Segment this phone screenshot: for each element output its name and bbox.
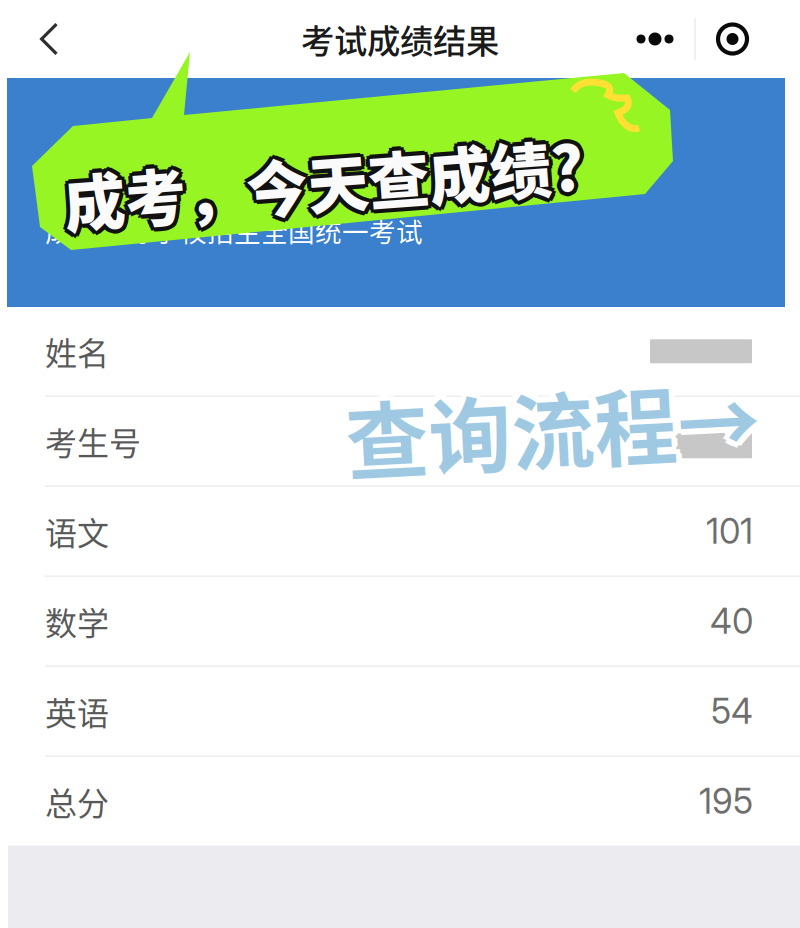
staticText: 考试成绩结果 [301, 15, 499, 63]
staticText: 查询流程→ [347, 381, 762, 501]
staticText: 成考，今天查成绩? [80, 133, 601, 222]
staticText: 语文 [45, 508, 109, 554]
staticText: 成考，今天查成绩? [88, 133, 609, 222]
staticText: 总分 [45, 778, 109, 824]
staticText: 54 [711, 690, 753, 732]
staticText: 101 [706, 510, 753, 552]
staticText: 成考，今天查成绩? [84, 129, 605, 218]
button[interactable]: More [616, 11, 694, 67]
staticText: 英语 [45, 688, 109, 734]
button[interactable]: 语文 [0, 487, 800, 575]
staticText: 195 [699, 780, 753, 822]
staticText: 成人高等学校招生全国统一考试 [45, 211, 423, 250]
button[interactable]: 姓名 [0, 307, 800, 395]
staticText: 查询流程→ [353, 375, 768, 495]
staticText: 查询流程→ [351, 371, 766, 490]
button[interactable]: 总分 [0, 757, 800, 845]
staticText: 成考，今天查成绩? [87, 130, 608, 219]
staticText: 40 [710, 600, 753, 642]
button[interactable]: 英语 [0, 667, 800, 755]
staticText: 查询流程→ [343, 379, 758, 499]
staticText: 查询流程→ [343, 371, 758, 490]
staticText: 查询流程→ [351, 379, 766, 499]
button[interactable]: Close [696, 11, 769, 67]
staticText: 成考，今天查成绩? [87, 136, 608, 225]
staticText: 成考，今天查成绩? [84, 133, 605, 222]
staticText: 查询流程→ [347, 375, 762, 495]
staticText: 成考，今天查成绩? [84, 137, 605, 226]
staticText: 数学 [45, 598, 109, 644]
button[interactable]: 考生号 [0, 397, 800, 485]
staticText: 成考，今天查成绩? [81, 130, 602, 219]
button[interactable]: 数学 [0, 577, 800, 665]
staticText: 查询流程→ [341, 375, 756, 495]
button[interactable]: Back [22, 6, 76, 72]
staticText: 姓名 [45, 328, 109, 374]
staticText: 成考，今天查成绩? [81, 136, 602, 225]
staticText: 查询流程→ [347, 369, 762, 489]
staticText: 考生号 [45, 418, 141, 464]
